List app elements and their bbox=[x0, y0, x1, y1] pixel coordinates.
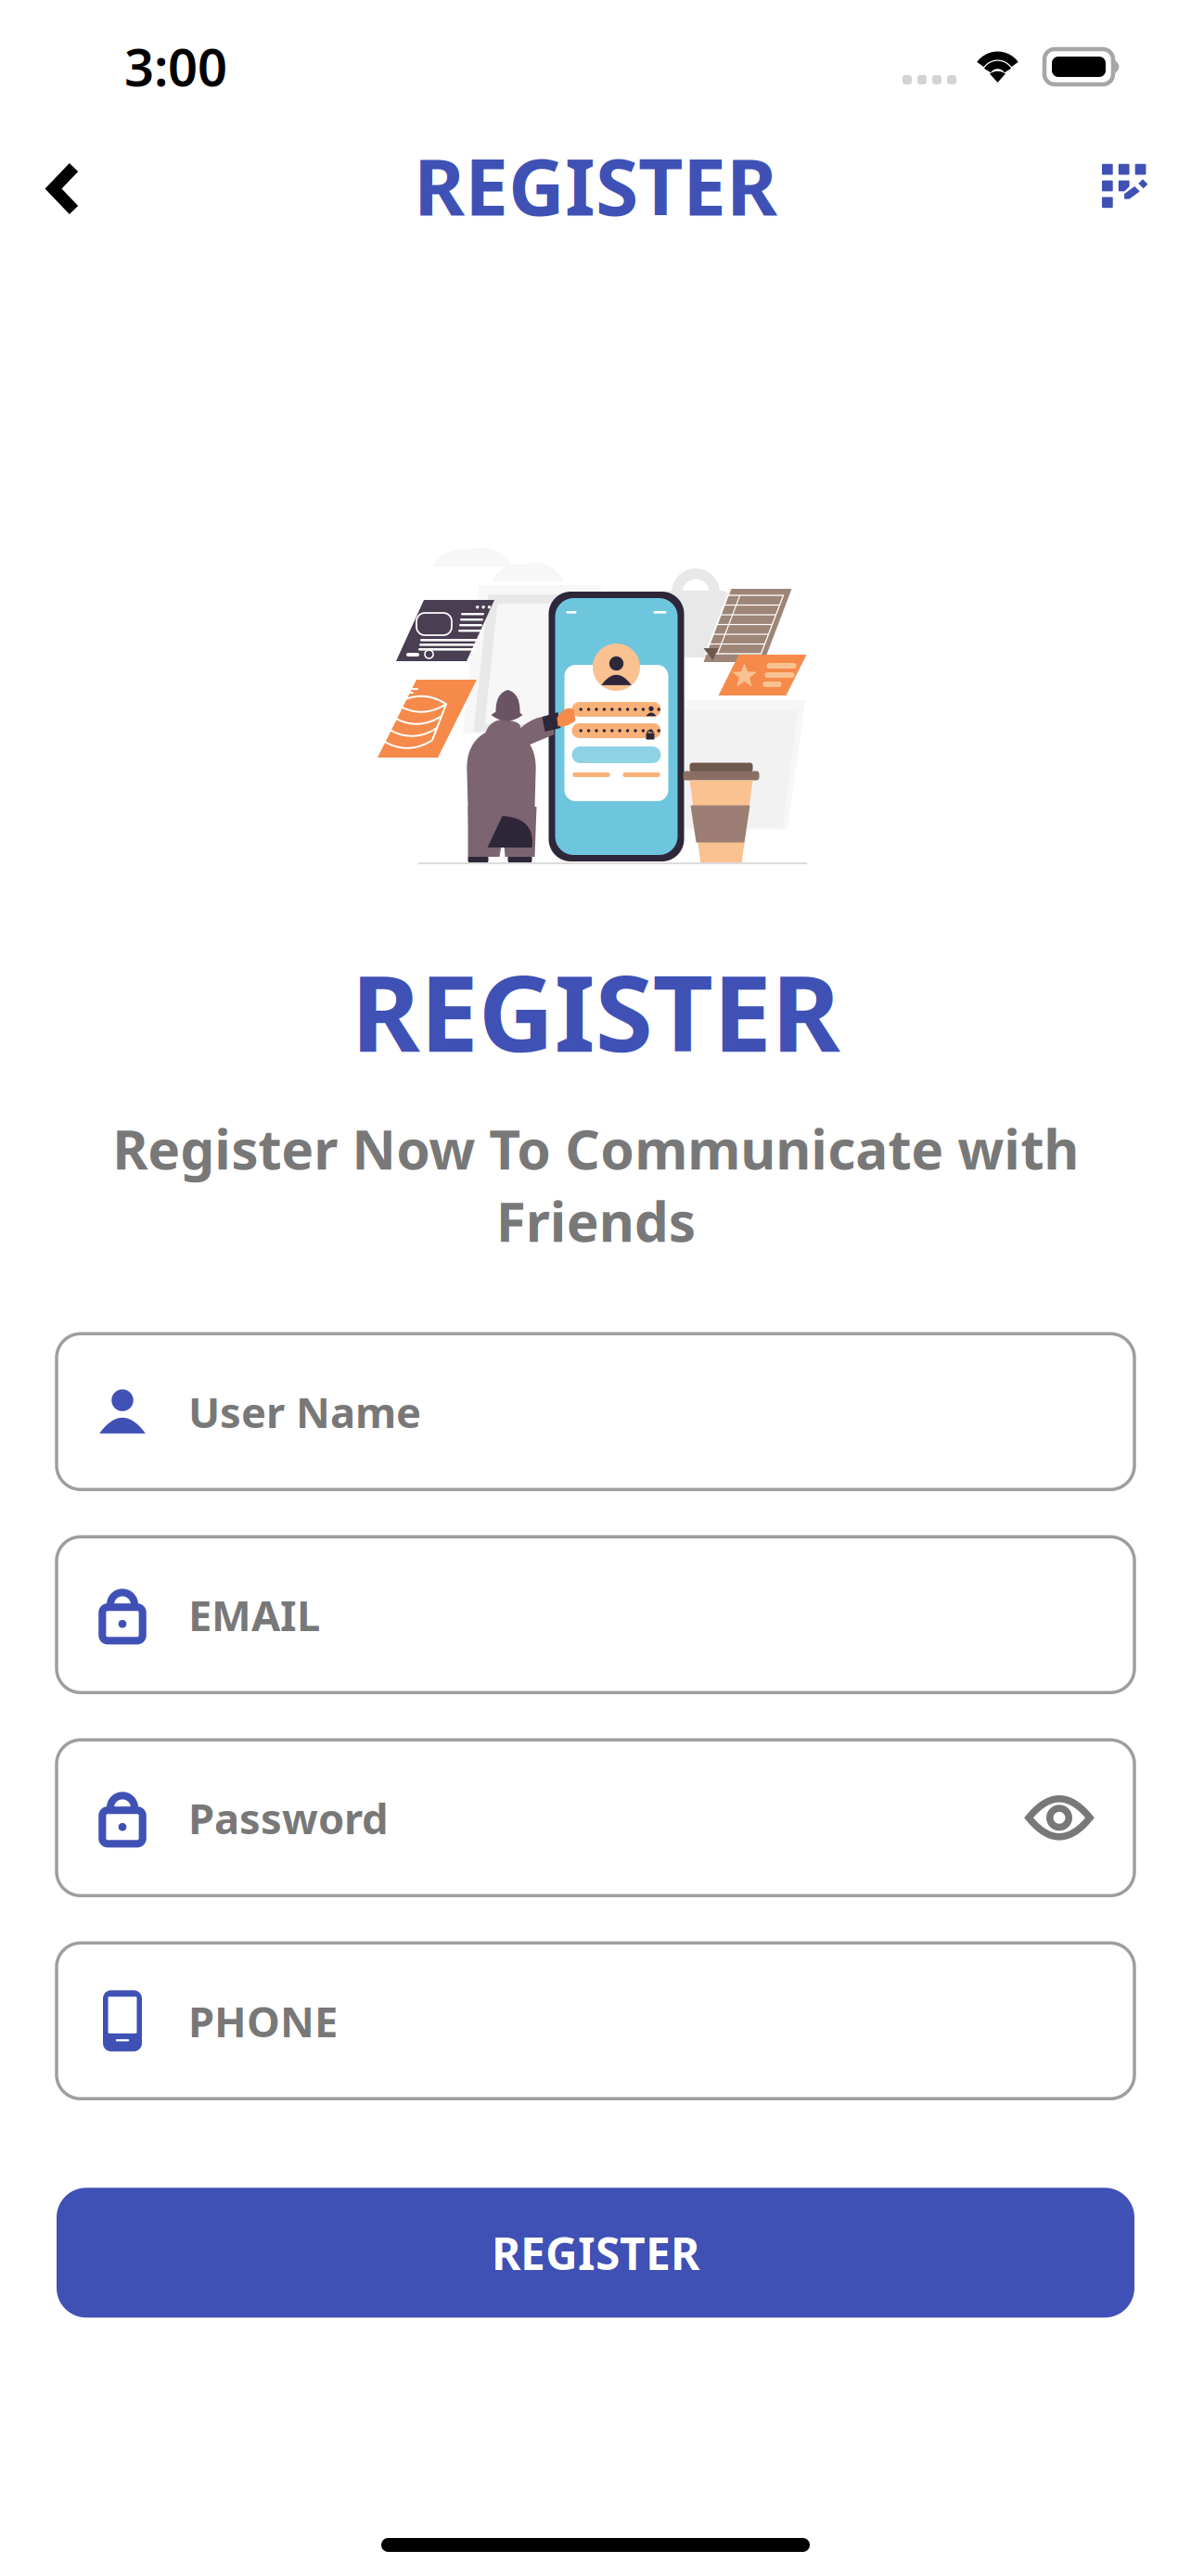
staticText: 3:00 bbox=[124, 32, 227, 101]
staticText: REGISTER bbox=[414, 134, 777, 237]
staticText: EMAIL bbox=[188, 1587, 320, 1643]
button[interactable]: PHONE bbox=[57, 1943, 1134, 2099]
button[interactable]: User Name bbox=[57, 1334, 1134, 1489]
staticText: Password bbox=[188, 1790, 389, 1846]
staticText: Register Now To Communicate with Friends bbox=[112, 1112, 1079, 1257]
staticText: REGISTER bbox=[351, 941, 840, 1081]
staticText: REGISTER bbox=[492, 2223, 699, 2282]
staticText: User Name bbox=[188, 1384, 421, 1440]
staticText: PHONE bbox=[188, 1993, 338, 2049]
button[interactable]: Edit bbox=[1057, 118, 1163, 223]
button[interactable]: EMAIL bbox=[57, 1537, 1134, 1693]
button[interactable]: Password bbox=[57, 1740, 1134, 1896]
button[interactable]: Back bbox=[23, 134, 113, 244]
button[interactable]: REGISTER bbox=[57, 2188, 1134, 2318]
